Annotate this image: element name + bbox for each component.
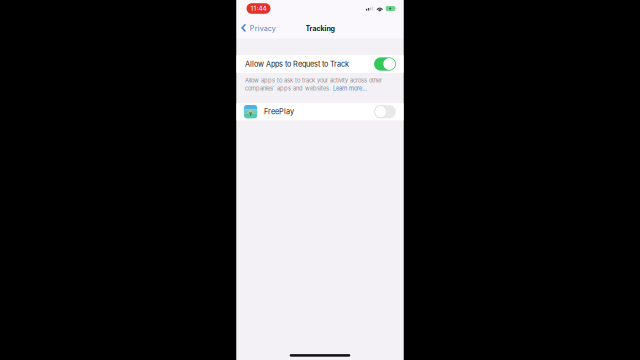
staticText: Tracking	[305, 24, 334, 33]
staticText: Allow Apps to Request to Track	[245, 60, 349, 68]
staticText: Allow apps to ask to track your activity…	[245, 77, 382, 84]
button[interactable]: FreePlay	[236, 103, 403, 120]
button[interactable]: Allow Apps to Request to Track	[236, 55, 403, 73]
button[interactable]: Privacy	[236, 20, 276, 36]
staticText: Privacy	[250, 24, 276, 33]
staticText: companies' apps and websites.	[245, 85, 333, 92]
staticText: 11:44	[250, 5, 266, 12]
staticText: FreePlay	[264, 107, 294, 116]
staticText: Learn more…	[333, 85, 367, 92]
